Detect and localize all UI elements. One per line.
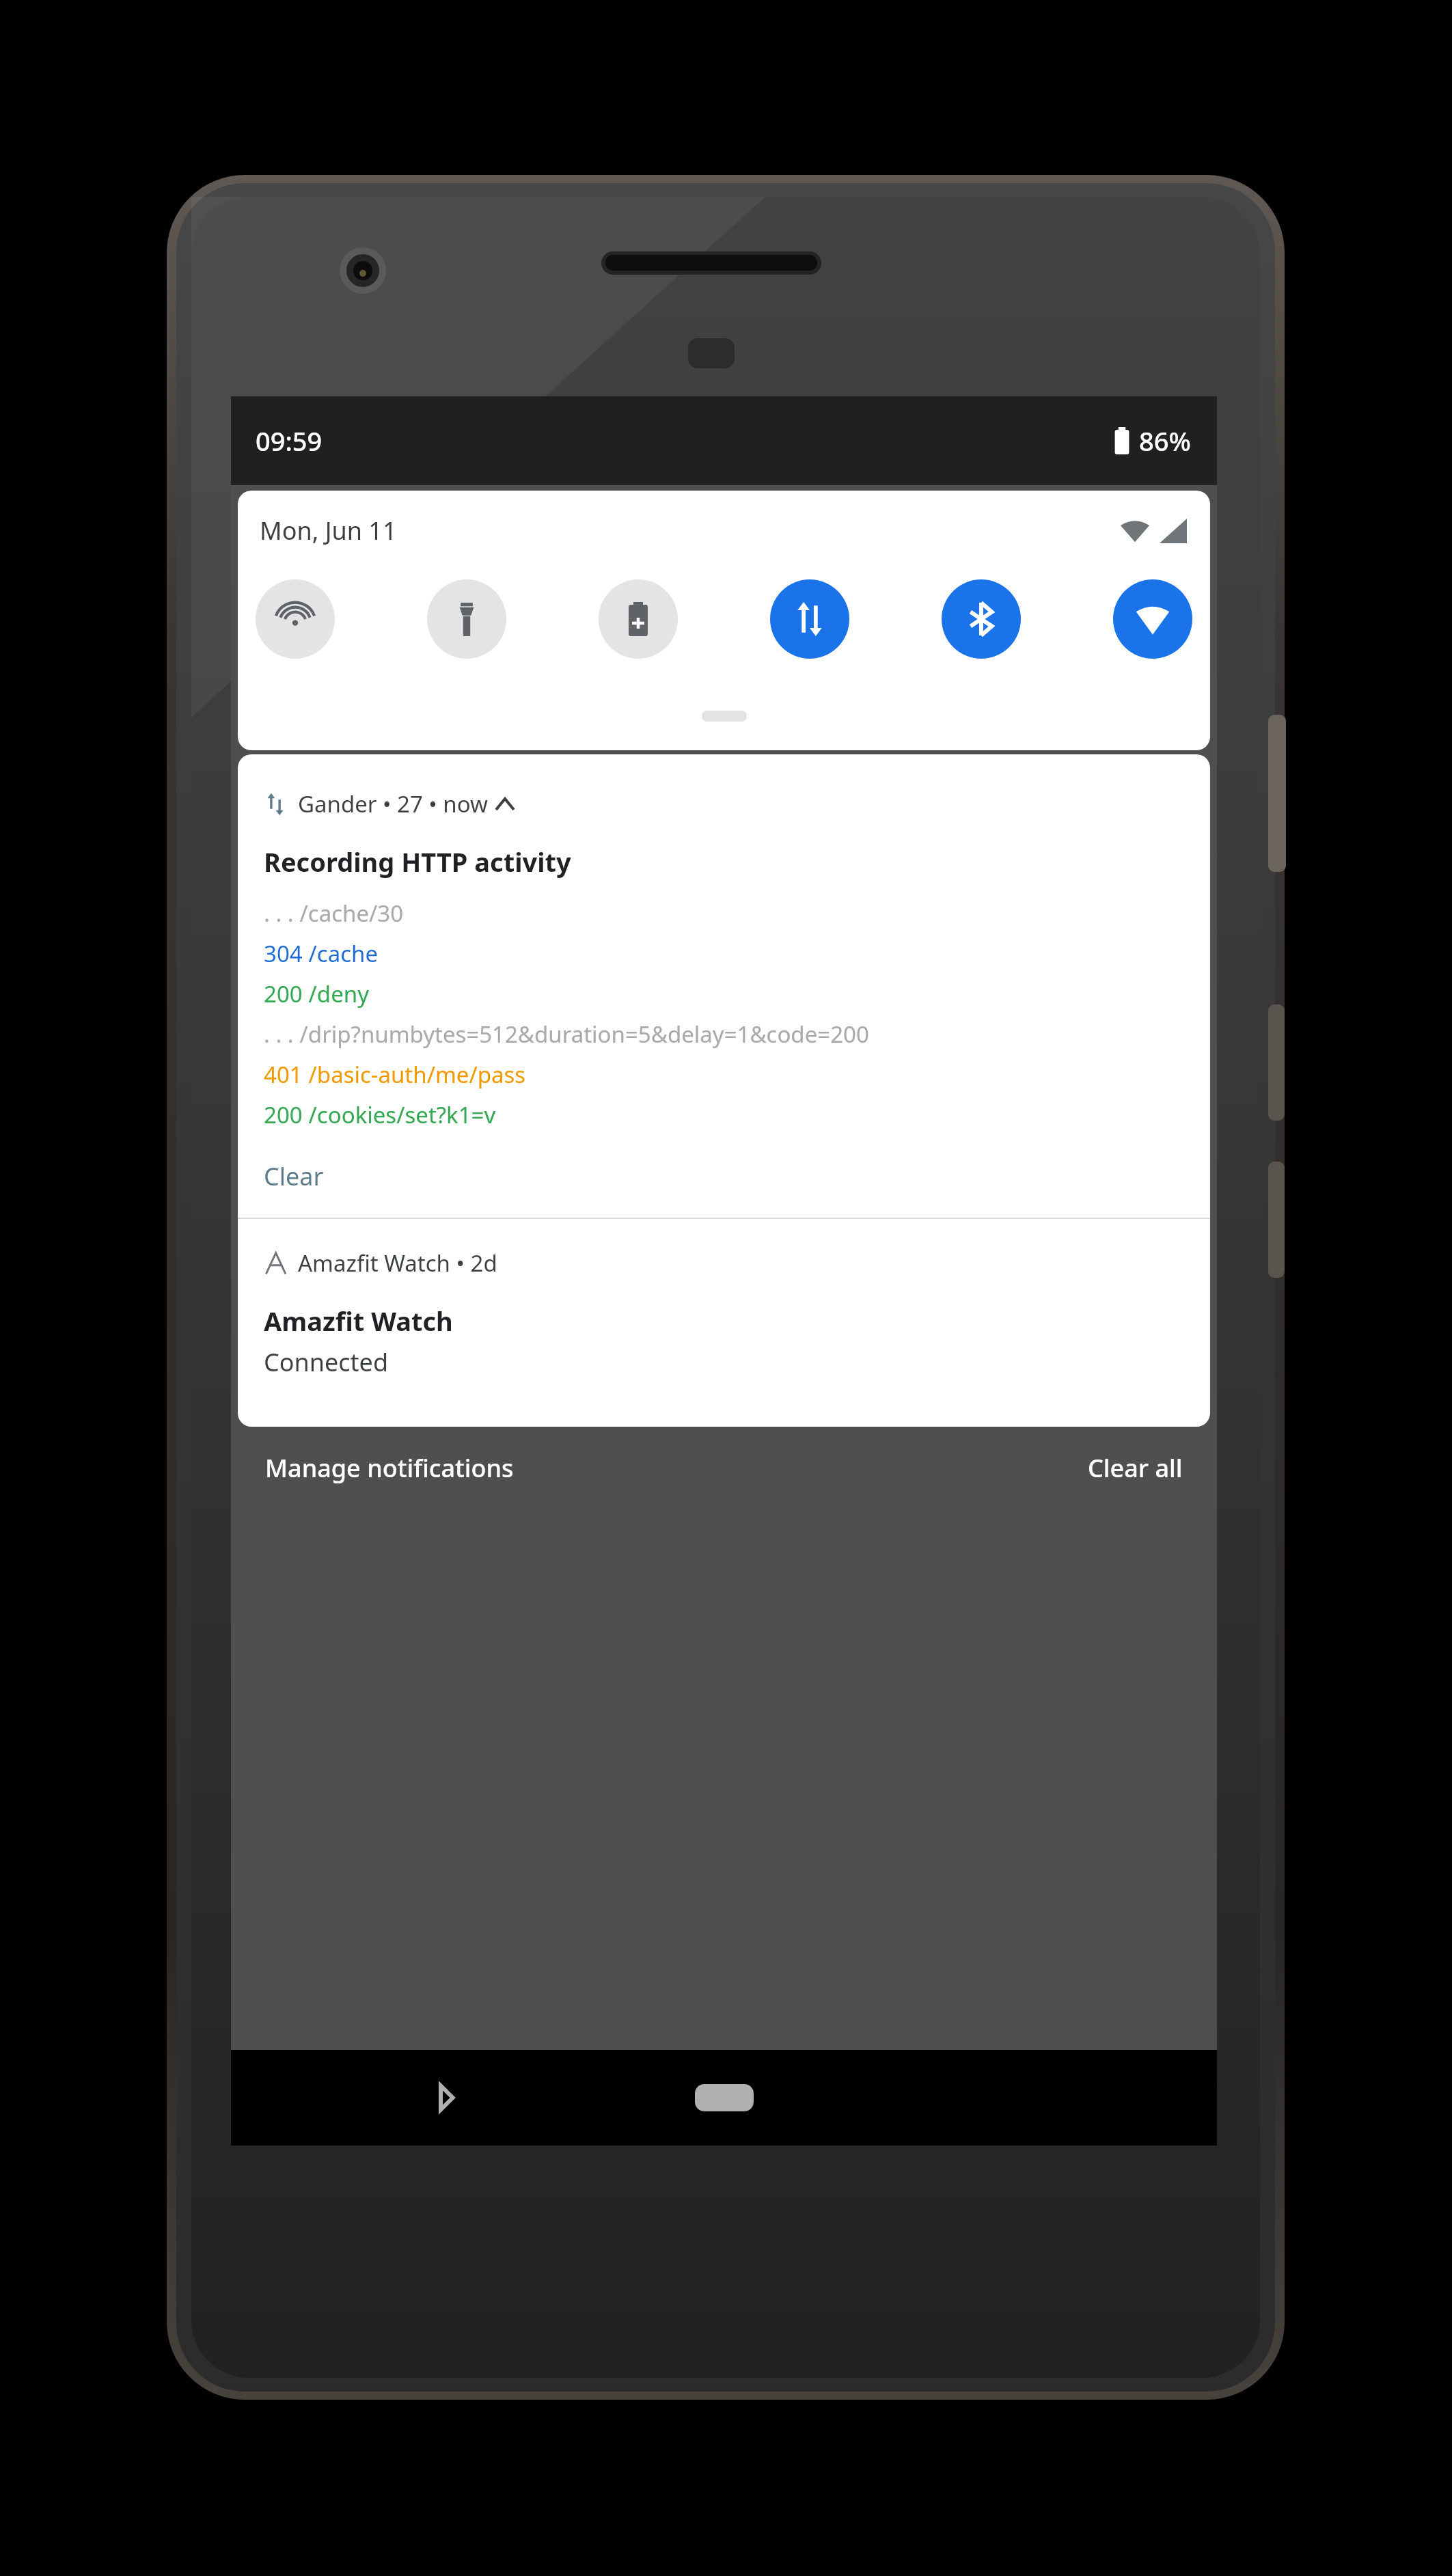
staticText: /basic-auth/me/pass [303, 1059, 526, 1090]
staticText: 200 [264, 1099, 303, 1130]
staticText: Gander • 27 • now [298, 789, 488, 819]
staticText: Amazfit Watch • 2d [298, 1248, 497, 1278]
button[interactable]: Manage notifications [265, 1451, 514, 1485]
staticText: . . . [264, 1019, 294, 1050]
staticText: Clear [264, 1160, 324, 1193]
button[interactable]: Home [676, 2067, 772, 2128]
staticText: /cookies/set?k1=v [303, 1099, 496, 1130]
staticText: /cache [303, 938, 379, 969]
staticText: Clear all [1088, 1451, 1183, 1485]
button[interactable]: Flashlight [427, 579, 506, 659]
button[interactable]: Bluetooth [942, 579, 1021, 659]
staticText: /deny [303, 978, 369, 1009]
staticText: 09:59 [256, 423, 323, 458]
button[interactable]: Gander • 27 • now [238, 754, 1210, 1218]
staticText: Amazfit Watch [264, 1303, 453, 1339]
button[interactable]: Mobile data [770, 579, 849, 659]
staticText: /drip?numbytes=512&duration=5&delay=1&co… [294, 1019, 869, 1050]
staticText: 304 [264, 938, 303, 969]
staticText: /cache/30 [294, 898, 404, 929]
button[interactable]: Battery saver [599, 579, 678, 659]
staticText: 401 [264, 1059, 303, 1090]
button[interactable]: Hotspot [256, 579, 335, 659]
staticText: Mon, Jun 11 [260, 514, 397, 547]
button[interactable]: Clear all [1088, 1451, 1183, 1485]
staticText: . . . [264, 898, 294, 929]
staticText: 200 [264, 978, 303, 1009]
staticText: Connected [264, 1345, 389, 1379]
button[interactable]: Amazfit Watch • 2d [238, 1219, 1210, 1427]
staticText: Manage notifications [265, 1451, 514, 1485]
button[interactable]: Back [409, 2060, 484, 2135]
staticText: 86% [1139, 423, 1191, 458]
button[interactable]: Wi-Fi [1113, 579, 1192, 659]
staticText: Recording HTTP activity [264, 844, 571, 879]
button[interactable]: Clear [264, 1160, 324, 1193]
